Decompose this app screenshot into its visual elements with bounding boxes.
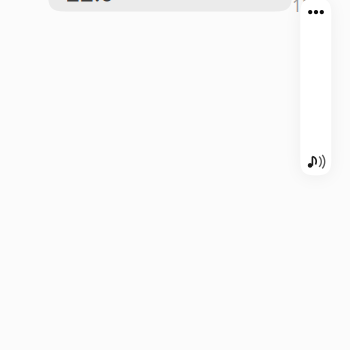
staticText: 22:0 xyxy=(66,0,114,8)
button[interactable]: 22:0 xyxy=(48,0,292,11)
staticText: 12 xyxy=(292,0,312,17)
button[interactable]: Now playing xyxy=(302,148,333,177)
button[interactable]: More options xyxy=(300,0,331,25)
